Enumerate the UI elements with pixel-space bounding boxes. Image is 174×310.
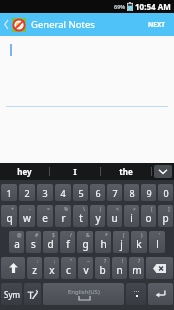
button[interactable]: [ (141, 205, 156, 227)
button[interactable]: Expand suggestions (154, 165, 172, 178)
staticText: u (111, 211, 118, 225)
button[interactable]: = (37, 205, 53, 227)
button[interactable]: < (107, 205, 122, 227)
staticText: m (132, 263, 142, 277)
staticText: + (11, 206, 14, 213)
button[interactable]: * (95, 231, 111, 253)
button[interactable]: \ (73, 205, 88, 227)
button[interactable]: hey (0, 163, 49, 180)
staticText: k (136, 237, 142, 251)
button[interactable]: Shift (1, 257, 25, 279)
button[interactable]: + (1, 205, 17, 227)
staticText: 2 (24, 187, 30, 199)
staticText: f (66, 237, 70, 251)
button[interactable]: Sym (1, 283, 22, 305)
staticText: c (66, 263, 71, 277)
button[interactable]: Period (126, 283, 146, 305)
button[interactable]: ! (112, 257, 127, 279)
button[interactable]: 7 (107, 184, 122, 201)
staticText: @ (17, 232, 22, 239)
button[interactable]: 0 (158, 184, 173, 201)
staticText: ! (122, 258, 124, 265)
staticText: > (133, 206, 136, 213)
button[interactable]: the (101, 163, 151, 180)
staticText: the (119, 166, 133, 177)
button[interactable]: - (19, 205, 35, 227)
staticText: : (37, 258, 39, 265)
button[interactable]: " (61, 257, 76, 279)
staticText: 10:54 AM (135, 1, 171, 12)
staticText: 0 (163, 187, 169, 199)
staticText: ; (54, 258, 56, 265)
button[interactable]: I (50, 163, 100, 180)
staticText: g (82, 237, 89, 251)
button[interactable]: ~ (78, 257, 93, 279)
button[interactable]: Handwriting (24, 283, 41, 305)
button[interactable]: 9 (141, 184, 156, 201)
staticText: $ (52, 232, 55, 239)
button[interactable]: 3 (37, 184, 53, 201)
button[interactable]: 4 (55, 184, 71, 201)
staticText: a (14, 237, 20, 251)
button[interactable]: # (26, 231, 41, 253)
button[interactable]: Backspace (146, 257, 173, 279)
button[interactable]: Space (43, 283, 124, 305)
staticText: d (47, 237, 54, 251)
button[interactable]: 5 (73, 184, 88, 201)
staticText: 1 (6, 187, 12, 199)
button[interactable]: 6 (90, 184, 105, 201)
button[interactable]: 1 (1, 184, 17, 201)
staticText: x (49, 263, 55, 277)
button[interactable]: & (77, 231, 93, 253)
staticText: p (162, 211, 169, 225)
staticText: 8 (129, 187, 135, 199)
staticText: 5 (78, 187, 84, 199)
button[interactable]: ; (44, 257, 59, 279)
staticText: b (99, 263, 106, 277)
staticText: e (42, 211, 48, 225)
button[interactable]: NEXT (140, 13, 174, 36)
staticText: ( (123, 232, 125, 239)
button[interactable]: | (90, 205, 105, 227)
button[interactable]: / (60, 231, 75, 253)
staticText: y (95, 211, 101, 225)
button[interactable]: $ (43, 231, 58, 253)
button[interactable]: ( (113, 231, 129, 253)
staticText: English(US) (68, 288, 100, 296)
button[interactable]: 2 (19, 184, 35, 201)
button[interactable]: ' (149, 231, 165, 253)
staticText: Sym (4, 289, 20, 300)
staticText: w (23, 211, 31, 225)
button[interactable]: : (27, 257, 42, 279)
staticText: ? (104, 258, 107, 265)
button[interactable]: 8 (124, 184, 139, 201)
staticText: 6 (95, 187, 101, 199)
staticText: I (73, 166, 77, 177)
button[interactable]: > (124, 205, 139, 227)
staticText: 7 (112, 187, 118, 199)
staticText: 9 (146, 187, 152, 199)
staticText: ' (159, 232, 161, 239)
button[interactable]: @ (9, 231, 24, 253)
staticText: j (120, 237, 123, 251)
button[interactable]: ? (95, 257, 110, 279)
staticText: q (6, 211, 13, 225)
staticText: - (29, 206, 31, 213)
staticText: ? (138, 258, 141, 265)
button[interactable]: ) (131, 231, 147, 253)
staticText: l (156, 237, 159, 251)
staticText: | (99, 206, 102, 213)
staticText: % (64, 206, 69, 213)
staticText: s (31, 237, 36, 251)
staticText: z (32, 263, 37, 277)
button[interactable]: Enter (148, 283, 173, 305)
staticText: / (70, 232, 72, 239)
staticText: = (47, 206, 50, 213)
button[interactable]: ] (158, 205, 173, 227)
staticText: 4 (60, 187, 66, 199)
button[interactable]: ? (129, 257, 144, 279)
button[interactable]: Back (0, 13, 12, 36)
staticText: * (105, 232, 108, 239)
staticText: h (100, 237, 107, 251)
button[interactable]: % (55, 205, 71, 227)
